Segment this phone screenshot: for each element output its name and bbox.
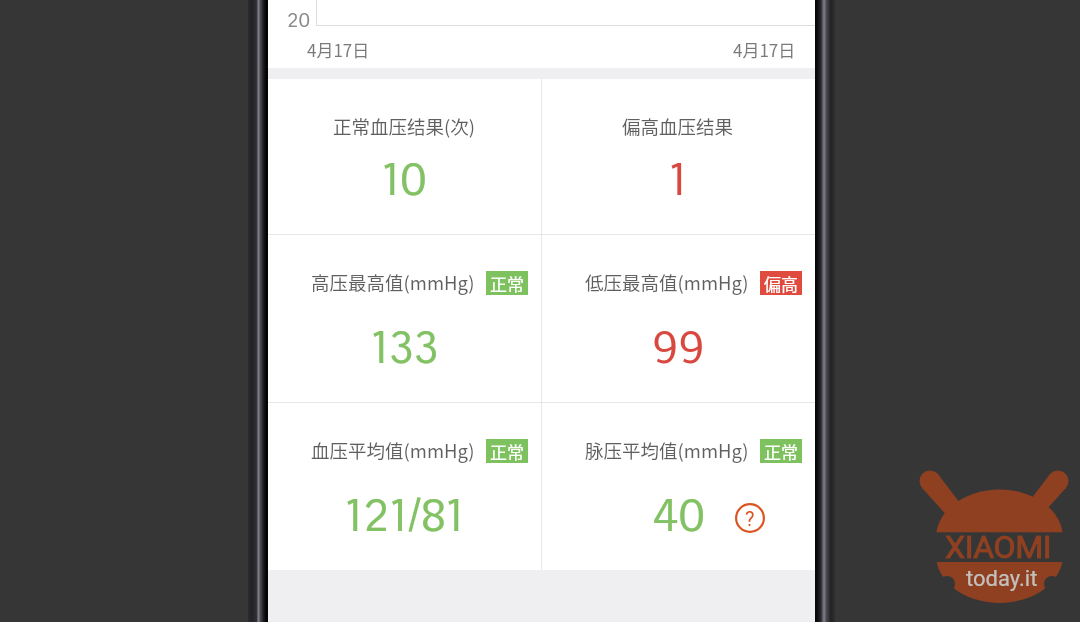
staticText: 10 <box>382 151 427 207</box>
staticText: 正常 <box>490 271 524 295</box>
staticText: 99 <box>652 319 705 375</box>
button[interactable]: 血压平均值(mmHg) <box>268 403 541 570</box>
staticText: 1 <box>669 151 687 207</box>
staticText: XIAOMI <box>945 528 1052 566</box>
staticText: 133 <box>371 319 439 375</box>
button[interactable]: 低压最高值(mmHg) <box>541 235 815 402</box>
staticText: 高压最高值(mmHg) <box>311 269 475 296</box>
staticText: 正常 <box>764 439 798 463</box>
staticText: 血压平均值(mmHg) <box>311 437 475 464</box>
button[interactable]: Help <box>735 503 765 533</box>
staticText: today.it <box>966 566 1038 592</box>
staticText: 正常血压结果(次) <box>333 113 476 140</box>
staticText: 4月17日 <box>733 37 796 62</box>
staticText: 20 <box>287 8 311 32</box>
staticText: 4月17日 <box>307 37 370 62</box>
staticText: 40 <box>652 487 706 543</box>
button[interactable]: 脉压平均值(mmHg) <box>541 403 815 570</box>
button[interactable]: 偏高血压结果 <box>541 79 815 234</box>
button[interactable]: 高压最高值(mmHg) <box>268 235 541 402</box>
button[interactable]: 正常血压结果(次) <box>268 79 541 234</box>
staticText: 偏高血压结果 <box>622 113 734 140</box>
staticText: 偏高 <box>764 271 798 295</box>
staticText: 低压最高值(mmHg) <box>585 269 749 296</box>
staticText: 脉压平均值(mmHg) <box>585 437 749 464</box>
staticText: 121/81 <box>345 487 465 543</box>
staticText: ? <box>745 507 755 530</box>
staticText: 正常 <box>490 439 524 463</box>
